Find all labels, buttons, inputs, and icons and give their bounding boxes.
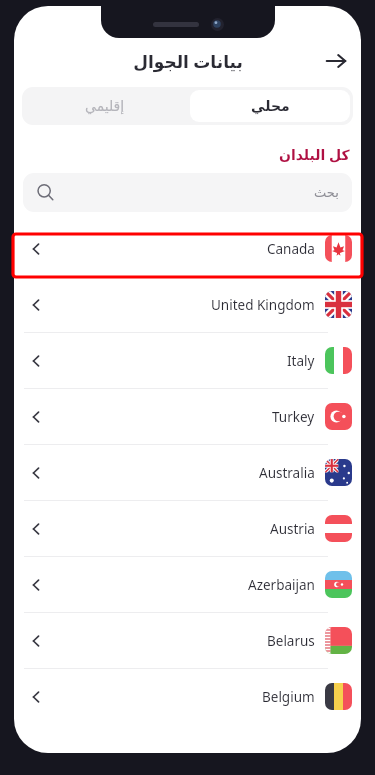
staticText: Turkey (272, 408, 315, 426)
button[interactable]: Belarus (14, 613, 361, 668)
staticText: بيانات الجوال (133, 50, 243, 73)
staticText: Australia (259, 464, 315, 482)
button[interactable]: Austria (14, 501, 361, 556)
staticText: Italy (287, 352, 315, 370)
button[interactable]: بحث (23, 173, 352, 212)
staticText: Belarus (267, 632, 315, 650)
button[interactable]: Forward (317, 42, 355, 80)
staticText: محلي (251, 98, 290, 114)
button[interactable]: Italy (14, 333, 361, 388)
staticText: Azerbaijan (248, 576, 315, 594)
button[interactable]: محلي (190, 90, 350, 122)
button[interactable]: Canada (14, 221, 361, 276)
button[interactable]: United Kingdom (14, 277, 361, 332)
button[interactable]: إقليمي (22, 87, 187, 125)
button[interactable]: Azerbaijan (14, 557, 361, 612)
button[interactable]: Turkey (14, 389, 361, 444)
staticText: كل البلدان (279, 145, 350, 164)
staticText: Austria (270, 520, 315, 538)
staticText: United Kingdom (211, 296, 315, 314)
staticText: إقليمي (85, 98, 125, 114)
staticText: Belgium (262, 688, 315, 706)
button[interactable]: Australia (14, 445, 361, 500)
staticText: بحث (314, 185, 339, 200)
staticText: Canada (267, 240, 315, 258)
button[interactable]: Belgium (14, 669, 361, 724)
